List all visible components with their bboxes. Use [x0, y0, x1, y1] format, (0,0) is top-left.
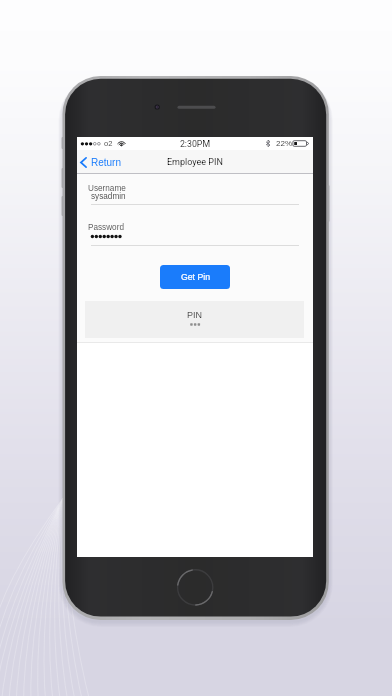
staticText: PIN	[85, 310, 304, 320]
staticText: sysadmin	[91, 192, 126, 201]
button[interactable]: PIN	[85, 301, 304, 338]
staticText: 22%	[276, 139, 293, 148]
button[interactable]: Get Pin	[160, 265, 230, 289]
button[interactable]: Return	[77, 154, 128, 171]
button[interactable]	[77, 179, 313, 211]
staticText: o2	[104, 139, 113, 147]
staticText: Username	[88, 184, 126, 193]
staticText: Return	[91, 157, 122, 168]
staticText: 2:30PM	[77, 139, 313, 149]
staticText: Password	[88, 223, 124, 232]
staticText: Get Pin	[181, 272, 210, 282]
staticText: Employee PIN	[167, 157, 223, 168]
